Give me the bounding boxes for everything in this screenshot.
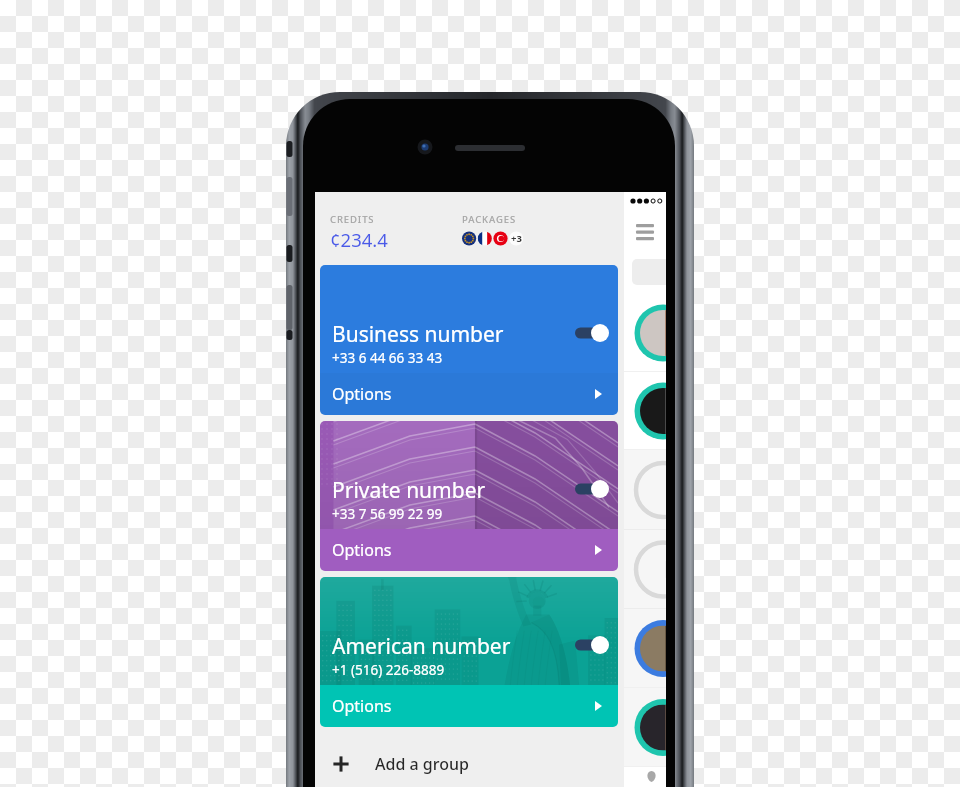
- button[interactable]: Business number: [320, 265, 618, 373]
- staticText: ¢234.4: [330, 227, 388, 252]
- button[interactable]: Options: [320, 685, 618, 727]
- staticText: Business number: [332, 320, 504, 349]
- staticText: +1 (516) 226-8889: [332, 661, 445, 679]
- button[interactable]: Private number: [320, 421, 618, 529]
- button[interactable]: [624, 688, 666, 767]
- button[interactable]: Options: [320, 373, 618, 415]
- button[interactable]: Toggle Business number: [575, 322, 611, 344]
- staticText: Options: [332, 695, 392, 717]
- button[interactable]: Options: [320, 529, 618, 571]
- staticText: PACKAGES: [462, 213, 517, 226]
- button[interactable]: Toggle American number: [575, 634, 611, 656]
- button[interactable]: Toggle Private number: [575, 478, 611, 500]
- staticText: Options: [332, 539, 392, 561]
- button[interactable]: [624, 609, 666, 688]
- staticText: Add a group: [375, 753, 469, 775]
- staticText: Options: [332, 383, 392, 405]
- button[interactable]: [624, 294, 666, 372]
- staticText: Private number: [332, 476, 486, 505]
- staticText: +33 6 44 66 33 43: [332, 349, 443, 367]
- button[interactable]: [624, 372, 666, 450]
- button[interactable]: Add a group: [315, 744, 624, 784]
- staticText: CREDITS: [330, 213, 375, 226]
- staticText: American number: [332, 632, 511, 661]
- button[interactable]: American number: [320, 577, 618, 685]
- staticText: +33 7 56 99 22 99: [332, 505, 443, 523]
- staticText: +3: [511, 232, 522, 245]
